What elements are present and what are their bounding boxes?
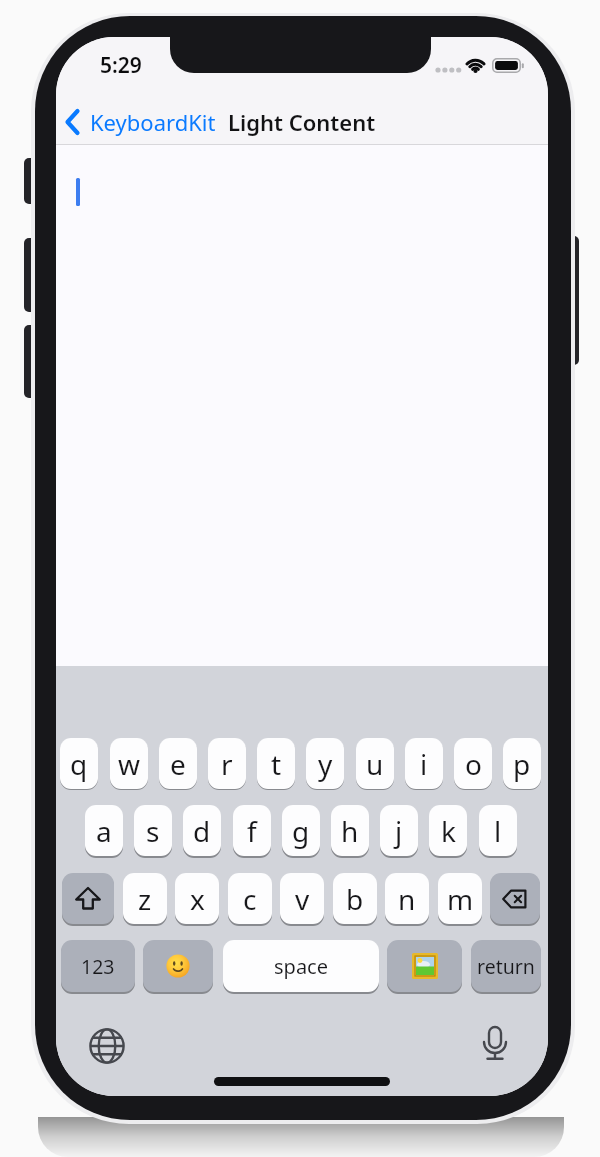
button[interactable]: e: [159, 738, 197, 789]
staticText: d: [193, 812, 211, 850]
button[interactable]: j: [380, 805, 418, 856]
button[interactable]: r: [208, 738, 246, 789]
staticText: w: [118, 745, 141, 783]
button[interactable]: q: [60, 738, 98, 789]
button[interactable]: n: [385, 873, 429, 924]
button[interactable]: return: [471, 940, 541, 992]
staticText: l: [494, 812, 502, 850]
staticText: 123: [81, 953, 115, 980]
staticText: e: [170, 745, 186, 783]
button[interactable]: p: [503, 738, 541, 789]
button[interactable]: 123: [61, 940, 135, 992]
staticText: o: [465, 745, 482, 783]
staticText: k: [441, 812, 456, 850]
staticText: a: [96, 812, 112, 850]
button[interactable]: s: [134, 805, 172, 856]
staticText: g: [292, 812, 310, 850]
button[interactable]: o: [454, 738, 492, 789]
staticText: z: [138, 880, 152, 918]
staticText: n: [398, 880, 416, 918]
staticText: h: [341, 812, 359, 850]
button[interactable]: b: [333, 873, 377, 924]
staticText: Light Content: [228, 107, 376, 137]
button[interactable]: [143, 940, 213, 992]
staticText: return: [477, 953, 535, 980]
button[interactable]: x: [175, 873, 219, 924]
staticText: j: [395, 812, 403, 850]
button[interactable]: [480, 1022, 510, 1064]
staticText: r: [221, 745, 233, 783]
staticText: y: [318, 745, 333, 783]
button[interactable]: t: [257, 738, 295, 789]
button[interactable]: f: [233, 805, 271, 856]
staticText: f: [247, 812, 257, 850]
staticText: b: [346, 880, 364, 918]
staticText: q: [70, 745, 88, 783]
staticText: 5:29: [100, 51, 142, 79]
button[interactable]: a: [85, 805, 123, 856]
button[interactable]: [387, 940, 462, 992]
button[interactable]: k: [429, 805, 467, 856]
staticText: u: [366, 745, 384, 783]
button[interactable]: c: [228, 873, 272, 924]
button[interactable]: g: [282, 805, 320, 856]
staticText: p: [513, 745, 531, 783]
button[interactable]: space: [223, 940, 379, 992]
button[interactable]: w: [110, 738, 148, 789]
button[interactable]: y: [306, 738, 344, 789]
button[interactable]: v: [280, 873, 324, 924]
staticText: i: [420, 745, 428, 783]
button[interactable]: h: [331, 805, 369, 856]
staticText: m: [447, 880, 474, 918]
button[interactable]: i: [405, 738, 443, 789]
button[interactable]: m: [438, 873, 482, 924]
button[interactable]: KeyboardKit: [62, 100, 232, 143]
button[interactable]: [490, 873, 540, 924]
staticText: x: [190, 880, 205, 918]
button[interactable]: [86, 1025, 128, 1067]
button[interactable]: z: [123, 873, 167, 924]
staticText: space: [274, 953, 328, 980]
staticText: c: [243, 880, 257, 918]
button[interactable]: u: [356, 738, 394, 789]
button[interactable]: [62, 873, 114, 924]
button[interactable]: l: [479, 805, 517, 856]
staticText: s: [146, 812, 160, 850]
button[interactable]: d: [183, 805, 221, 856]
staticText: v: [295, 880, 310, 918]
staticText: KeyboardKit: [90, 107, 216, 137]
staticText: t: [271, 745, 282, 783]
